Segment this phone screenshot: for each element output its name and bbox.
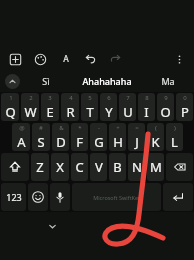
button[interactable]: V — [90, 153, 107, 181]
staticText: + — [116, 124, 120, 132]
staticText: 6 — [107, 94, 111, 102]
button[interactable]: X — [51, 153, 69, 181]
staticText: 3 — [48, 94, 52, 102]
button[interactable]: * — [71, 123, 88, 151]
button[interactable]: N — [128, 153, 145, 181]
staticText: ) — [174, 124, 176, 132]
button[interactable]: Microsoft SwiftKey — [72, 183, 161, 211]
staticText: L — [171, 133, 178, 151]
button[interactable]: Redo — [106, 50, 124, 68]
staticText: # — [39, 124, 43, 132]
staticText: 9 — [164, 94, 168, 102]
button[interactable]: & — [52, 123, 69, 151]
button[interactable]: ( — [147, 123, 164, 151]
button[interactable]: @ — [12, 123, 30, 151]
button[interactable]: 5 — [81, 93, 98, 121]
button[interactable]: 4 — [61, 93, 79, 121]
staticText: 8 — [145, 94, 149, 102]
staticText: R — [66, 103, 75, 121]
staticText: 5 — [88, 94, 92, 102]
button[interactable]: Voice input — [50, 183, 70, 211]
staticText: 4 — [69, 94, 73, 102]
button[interactable]: Sì — [20, 70, 72, 92]
staticText: & — [59, 124, 64, 132]
staticText: U — [123, 103, 133, 121]
staticText: P — [181, 103, 189, 121]
staticText: I — [144, 103, 149, 121]
staticText: K — [151, 133, 160, 151]
button[interactable]: 6 — [100, 93, 117, 121]
staticText: = — [135, 124, 139, 132]
button[interactable]: M — [147, 153, 164, 181]
staticText: G — [94, 133, 104, 151]
button[interactable]: 2 — [21, 93, 39, 121]
staticText: E — [46, 103, 54, 121]
button[interactable]: ) — [166, 123, 183, 151]
button[interactable]: = — [128, 123, 145, 151]
staticText: @ — [19, 124, 25, 132]
button[interactable]: Ahahahaha — [72, 70, 142, 92]
button[interactable]: 9 — [157, 93, 174, 121]
button[interactable]: Themes — [31, 50, 49, 68]
button[interactable]: Hide keyboard — [44, 218, 60, 234]
staticText: 123 — [6, 191, 22, 203]
staticText: B — [113, 158, 122, 176]
staticText: N — [132, 158, 142, 176]
button[interactable]: C — [71, 153, 88, 181]
staticText: H — [113, 133, 123, 151]
staticText: Microsoft SwiftKey — [93, 194, 141, 201]
staticText: Q — [5, 103, 16, 121]
staticText: O — [160, 103, 171, 121]
button[interactable]: Numbers — [1, 183, 26, 211]
staticText: * — [78, 124, 82, 132]
staticText: V — [95, 158, 103, 176]
staticText: Ahahahaha — [82, 75, 132, 87]
staticText: W — [24, 103, 37, 121]
button[interactable]: 0 — [176, 93, 193, 121]
button[interactable]: Toolbar — [6, 50, 24, 68]
button[interactable]: Backspace — [166, 153, 193, 181]
staticText: T — [86, 103, 94, 121]
staticText: Y — [105, 103, 113, 121]
button[interactable]: Enter — [163, 183, 193, 211]
staticText: A — [17, 133, 26, 151]
staticText: 0 — [183, 94, 187, 102]
button[interactable]: + — [109, 123, 126, 151]
button[interactable]: # — [32, 123, 50, 151]
staticText: Sì — [42, 75, 50, 87]
button[interactable]: Ma — [142, 70, 194, 92]
staticText: J — [135, 133, 139, 151]
staticText: - — [98, 124, 100, 132]
staticText: C — [75, 158, 84, 176]
staticText: Ma — [161, 75, 175, 87]
staticText: A — [63, 53, 69, 65]
staticText: 7 — [126, 94, 130, 102]
button[interactable]: 7 — [119, 93, 136, 121]
staticText: Z — [36, 158, 44, 176]
staticText: S — [37, 133, 45, 151]
button[interactable]: Text editing — [56, 50, 74, 68]
button[interactable]: Shift — [1, 153, 29, 181]
staticText: D — [56, 133, 66, 151]
button[interactable]: Z — [31, 153, 49, 181]
staticText: 2 — [29, 94, 33, 102]
button[interactable]: 3 — [41, 93, 59, 121]
staticText: F — [76, 133, 83, 151]
button[interactable]: 1 — [1, 93, 19, 121]
button[interactable]: B — [109, 153, 126, 181]
staticText: X — [56, 158, 64, 176]
button[interactable]: Undo — [81, 50, 99, 68]
staticText: M — [150, 158, 162, 176]
button[interactable]: Emoji — [28, 183, 48, 211]
staticText: 1 — [9, 94, 13, 102]
button[interactable]: 8 — [138, 93, 155, 121]
button[interactable]: More options — [170, 50, 188, 68]
button[interactable]: Expand — [5, 74, 20, 89]
staticText: ( — [155, 124, 157, 132]
button[interactable]: - — [90, 123, 107, 151]
